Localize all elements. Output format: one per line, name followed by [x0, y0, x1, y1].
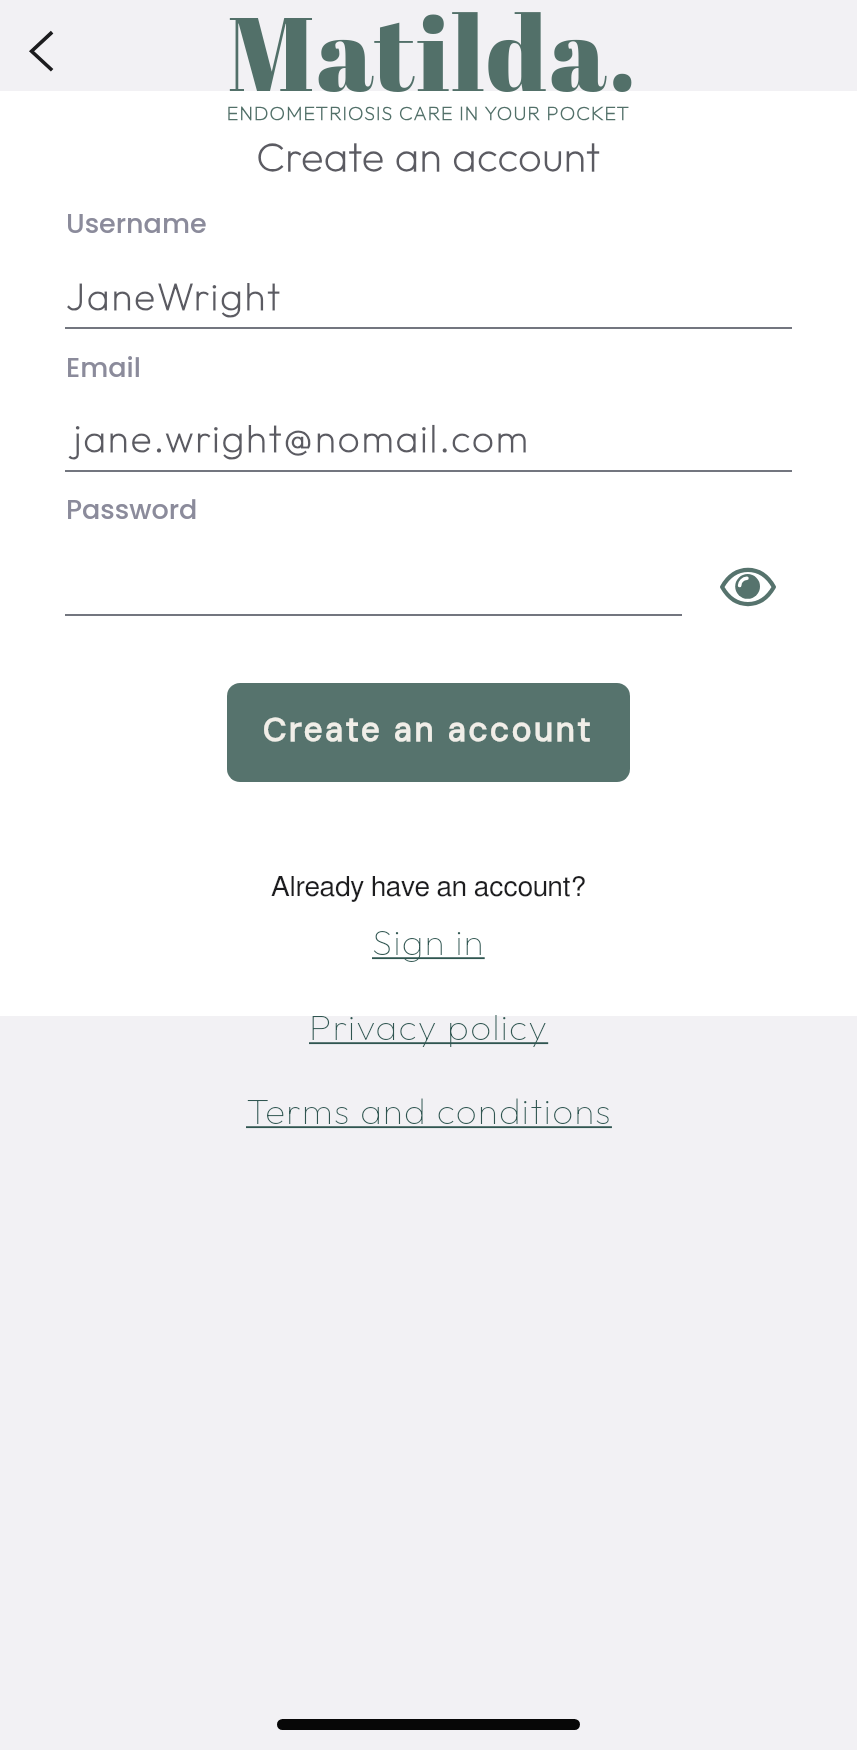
staticText: Already have an account? [0, 873, 857, 901]
button[interactable]: Show password [710, 558, 786, 616]
staticText: Password [66, 491, 198, 529]
staticText: Email [66, 349, 141, 387]
button[interactable]: Create an account [227, 683, 630, 782]
button[interactable]: Sign in [372, 918, 485, 964]
staticText: Username [66, 205, 207, 243]
staticText: Matilda. [4, 0, 857, 121]
staticText: Create an account [0, 130, 857, 181]
staticText: ENDOMETRIOSIS CARE IN YOUR POCKET [0, 100, 857, 125]
button[interactable]: Terms and conditions [246, 1087, 612, 1133]
staticText: Create an account [263, 708, 594, 751]
button[interactable]: Privacy policy [309, 1003, 549, 1049]
staticText: jane.wright@nomail.com [74, 414, 531, 462]
button[interactable]: Back [8, 22, 70, 80]
staticText: JaneWright [66, 272, 283, 320]
